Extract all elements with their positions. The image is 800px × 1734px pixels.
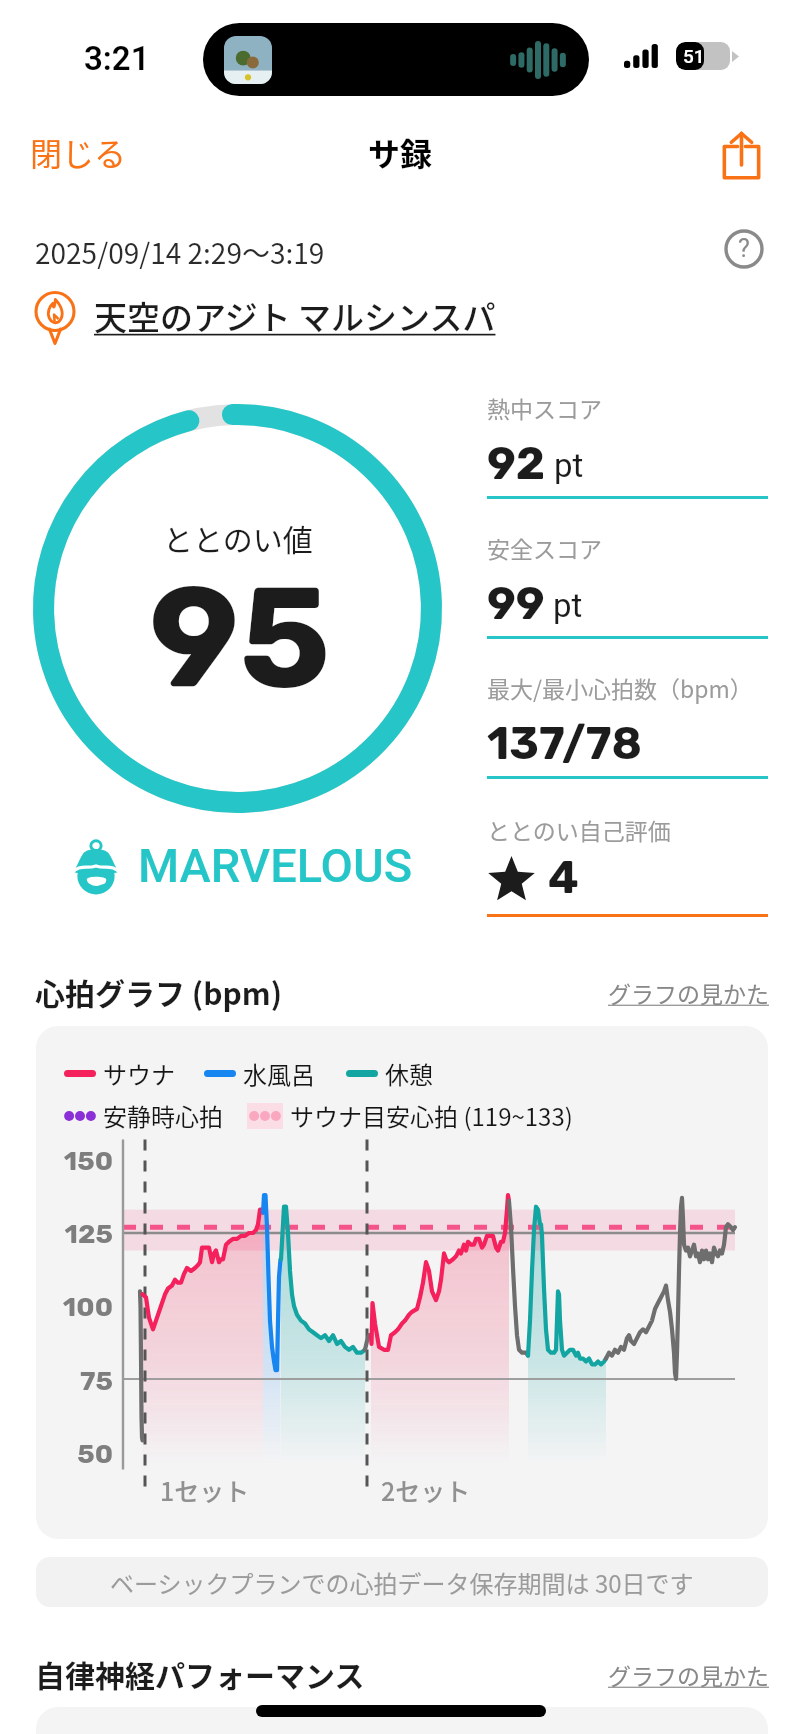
staticText: pt [554,446,584,485]
staticText: 天空のアジト マルシンスパ [94,292,496,340]
staticText: 2セット [381,1472,471,1508]
staticText: 50 [36,1438,113,1470]
staticText: 水風呂 [243,1056,315,1091]
staticText: 心拍グラフ (bpm) [35,970,283,1013]
button[interactable]: Share [706,112,800,192]
staticText: サウナ [103,1056,175,1091]
staticText: 4 [548,851,579,904]
staticText: 最大/最小心拍数（bpm） [487,671,753,704]
staticText: サ録 [368,129,433,175]
staticText: ととのい値 [163,516,313,559]
staticText: 99 [487,577,545,630]
staticText: 51 [683,45,705,67]
staticText: グラフの見かた [608,1658,769,1691]
staticText: 125 [36,1218,113,1250]
staticText: 100 [36,1291,113,1323]
staticText: 150 [36,1145,113,1177]
staticText: 3:21 [84,39,150,78]
staticText: 1セット [160,1472,250,1508]
staticText: 安静時心拍 [103,1098,223,1133]
button[interactable]: Help [722,227,766,271]
staticText: 75 [36,1365,113,1397]
staticText: ベーシックプランでの心拍データ保存期間は 30日です [110,1565,694,1600]
staticText: 自律神経パフォーマンス [35,1652,365,1695]
button[interactable]: グラフの見かた [608,976,769,1009]
button[interactable]: 閉じる [0,117,157,187]
staticText: 137/78 [487,717,642,770]
staticText: 2025/09/14 2:29〜3:19 [35,232,325,273]
staticText: 95 [149,554,331,721]
staticText: ととのい自己評価 [487,813,671,846]
staticText: 安全スコア [487,531,602,564]
staticText: pt [553,586,583,625]
staticText: 熱中スコア [487,391,602,424]
staticText: 92 [487,437,546,490]
button[interactable]: グラフの見かた [608,1658,769,1691]
staticText: 休憩 [385,1056,433,1091]
staticText: サウナ目安心拍 (119~133) [290,1098,573,1133]
button[interactable]: 天空のアジト マルシンスパ [30,286,496,346]
staticText: MARVELOUS [138,838,413,893]
staticText: ? [738,234,750,263]
staticText: 閉じる [30,129,127,175]
staticText: グラフの見かた [608,976,769,1009]
